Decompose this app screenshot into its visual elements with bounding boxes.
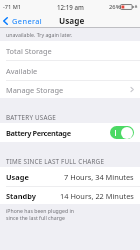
button[interactable]: Usage (0, 167, 140, 186)
button[interactable]: General (0, 16, 46, 26)
staticText: 26% (109, 3, 121, 11)
staticText: Usage (6, 172, 29, 182)
button[interactable]: Manage Storage (0, 81, 140, 98)
button[interactable]: Standby (0, 187, 140, 204)
staticText: BATTERY USAGE (6, 113, 57, 122)
staticText: Usage (59, 15, 85, 26)
staticText: Manage Storage (6, 85, 64, 95)
button[interactable]: Available (0, 61, 140, 80)
staticText: General (12, 16, 43, 26)
staticText: -71 M1 (3, 3, 21, 11)
other: Battery Percentage toggle, on (110, 126, 134, 139)
staticText: TIME SINCE LAST FULL CHARGE (6, 157, 105, 166)
staticText: Total Storage (6, 46, 52, 56)
staticText: unavailable. Try again later. (6, 31, 73, 38)
staticText: 7 Hours, 34 Minutes (64, 172, 134, 182)
other: Manage Storage (130, 86, 134, 93)
staticText: iPhone has been plugged in since the las… (6, 207, 74, 221)
staticText: 14 Hours, 22 Minutes (60, 191, 134, 201)
button[interactable]: Total Storage (0, 41, 140, 60)
staticText: Standby (6, 191, 36, 201)
staticText: 12:19 am (57, 3, 84, 11)
other: Battery 26 percent charging (120, 3, 140, 11)
staticText: Available (6, 66, 38, 76)
staticText: Battery Percentage (6, 128, 71, 138)
button[interactable]: Battery Percentage (0, 123, 140, 142)
